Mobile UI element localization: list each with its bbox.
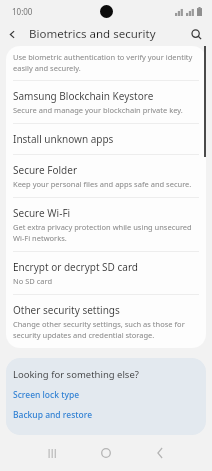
button[interactable]: Secure Folder [6,155,206,197]
button[interactable]: Back [0,22,24,46]
staticText: Other security settings [13,303,120,317]
staticText: No SD card [13,276,53,286]
button[interactable]: Recent apps [40,441,64,465]
button[interactable]: Backup and restore [13,409,196,421]
button[interactable]: Install unknown apps [6,124,206,154]
staticText: Keep your personal files and apps safe a… [13,179,192,189]
staticText: Use biometric authentication to verify y… [13,52,193,62]
staticText: Install unknown apps [13,132,114,146]
button[interactable]: Samsung Blockchain Keystore [6,81,206,123]
staticText: Change other security settings, such as … [13,319,185,329]
staticText: Encrypt or decrypt SD card [13,260,138,274]
staticText: Backup and restore [13,409,93,421]
button[interactable]: Screen lock type [13,389,196,401]
staticText: Secure and manage your blockchain privat… [13,105,183,115]
staticText: 10:00 [12,6,33,17]
button[interactable]: Other security settings [6,295,206,348]
staticText: easily and securely. [13,63,81,73]
button[interactable]: Home [94,441,118,465]
staticText: Wi-Fi networks. [13,233,67,243]
staticText: Biometrics and security [29,26,156,42]
staticText: Secure Wi-Fi [13,206,71,220]
staticText: Looking for something else? [13,368,139,381]
button[interactable]: Search [185,23,207,45]
staticText: Samsung Blockchain Keystore [13,89,154,103]
staticText: Get extra privacy protection while using… [13,222,192,232]
button[interactable]: Use biometric authentication to verify y… [6,46,206,80]
button[interactable]: Encrypt or decrypt SD card [6,252,206,294]
staticText: Screen lock type [13,389,80,401]
staticText: Secure Folder [13,163,78,177]
staticText: security updates and credential storage. [13,330,155,340]
button[interactable]: Secure Wi-Fi [6,198,206,251]
button[interactable]: Back [148,441,172,465]
